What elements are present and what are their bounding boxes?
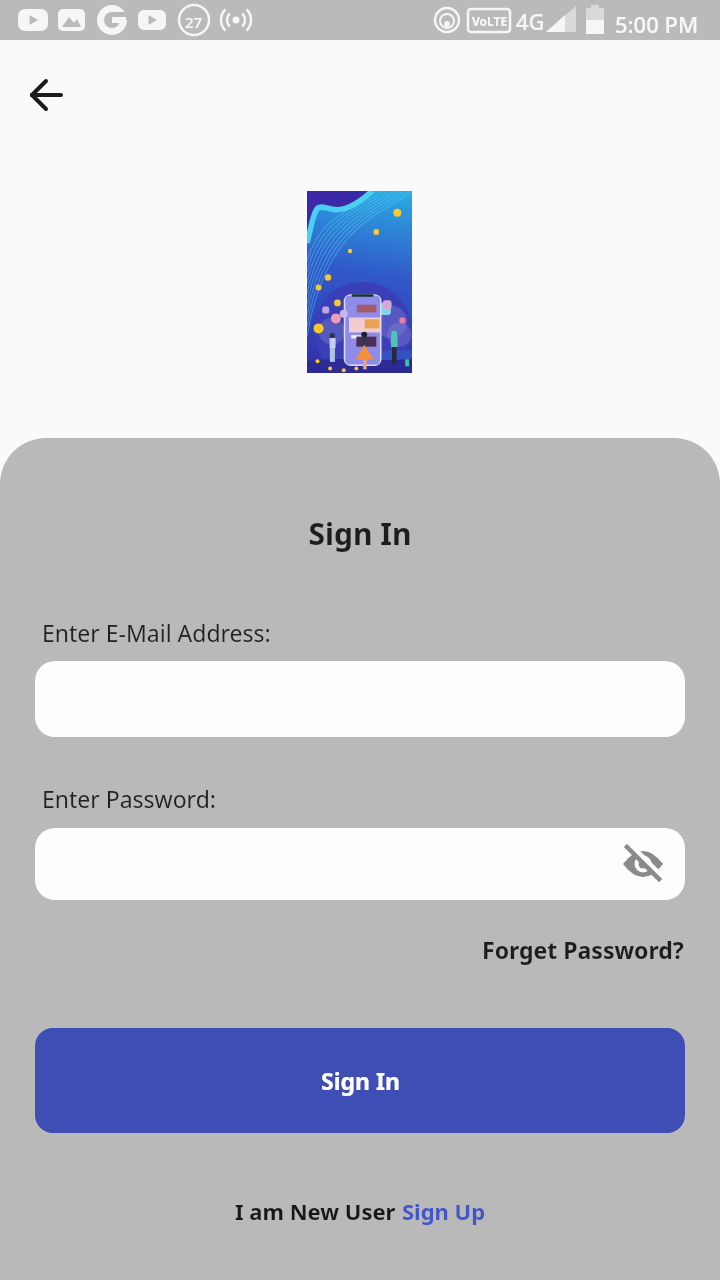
staticText: VoLTE [472, 13, 508, 29]
button[interactable] [24, 73, 68, 117]
button[interactable]: Sign In [35, 1028, 685, 1133]
staticText: 27 [185, 12, 203, 32]
button[interactable] [35, 828, 685, 900]
staticText: Sign In [0, 513, 720, 554]
button[interactable]: Forget Password? [482, 934, 684, 965]
staticText: 4G [516, 6, 545, 36]
button[interactable] [621, 842, 665, 886]
button[interactable]: Sign Up [402, 1196, 486, 1226]
staticText: 5:00 PM [615, 9, 699, 39]
staticText: Enter E-Mail Address: [42, 617, 271, 648]
staticText: Enter Password: [42, 783, 216, 814]
staticText: Sign In [321, 1065, 400, 1096]
staticText: I am New User [235, 1196, 402, 1226]
button[interactable] [35, 661, 685, 737]
